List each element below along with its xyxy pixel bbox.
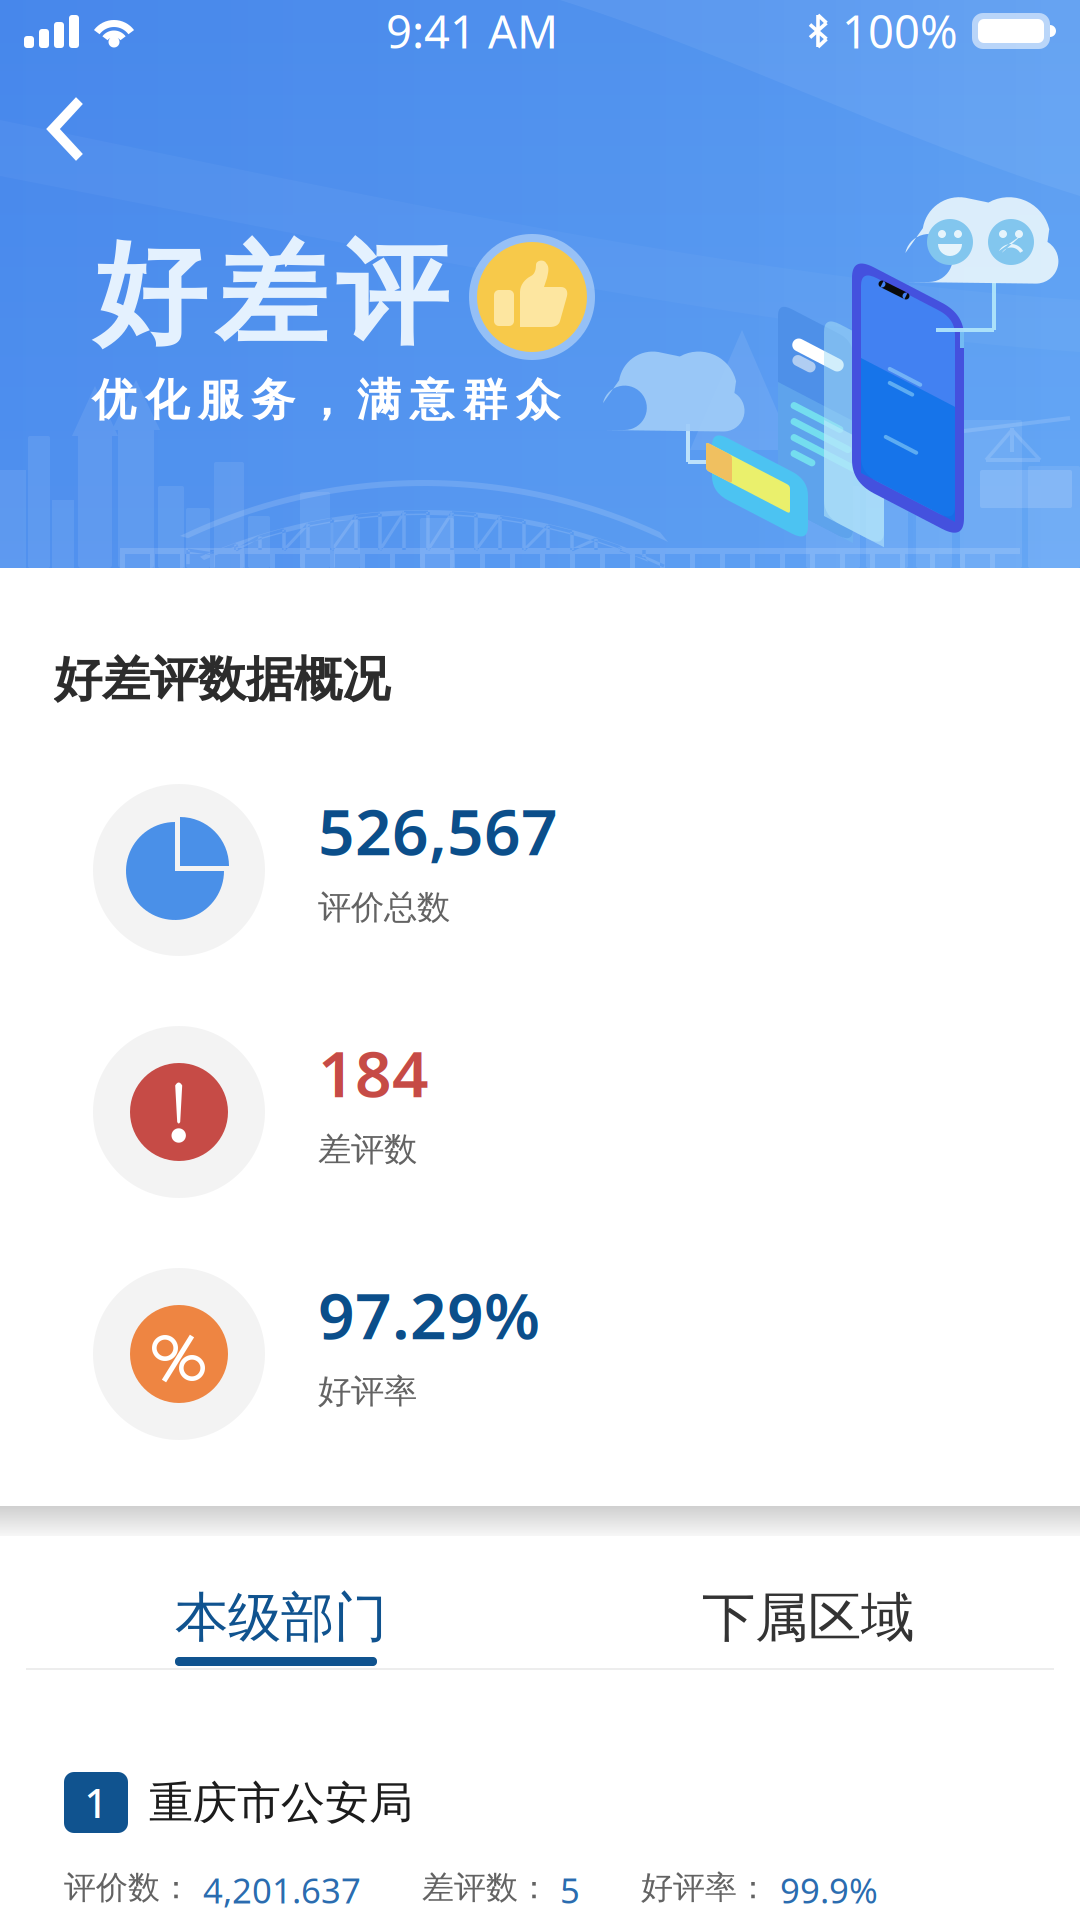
staticText: 本级部门	[175, 1585, 387, 1650]
staticText: 重庆市公安局	[149, 1776, 413, 1830]
button[interactable]: Back	[36, 88, 98, 174]
staticText: 下属区域	[702, 1585, 914, 1650]
staticText: 4,201.637	[203, 1867, 361, 1913]
button[interactable]: 下属区域	[540, 1549, 1080, 1679]
staticText: 优化服务，满意群众	[92, 373, 560, 427]
staticText: 9:41 AM	[386, 1, 558, 61]
staticText: 好差评	[94, 226, 448, 364]
button[interactable]: 1	[0, 1762, 1080, 1920]
staticText: 97.29%	[318, 1272, 540, 1357]
staticText: 评价总数	[318, 887, 450, 928]
staticText: 184	[318, 1030, 429, 1115]
staticText: 好差评数据概况	[54, 650, 390, 709]
staticText: 好评率	[318, 1371, 417, 1412]
staticText: 100%	[842, 1, 958, 61]
staticText: 差评数	[318, 1129, 417, 1170]
button[interactable]: 本级部门	[0, 1549, 540, 1679]
staticText: 1	[84, 1776, 107, 1829]
staticText: 5	[560, 1867, 580, 1913]
staticText: 526,567	[318, 788, 558, 873]
staticText: 评价数：	[64, 1868, 192, 1907]
staticText: 99.9%	[780, 1867, 878, 1913]
staticText: 好评率：	[641, 1868, 769, 1907]
staticText: 差评数：	[422, 1868, 550, 1907]
